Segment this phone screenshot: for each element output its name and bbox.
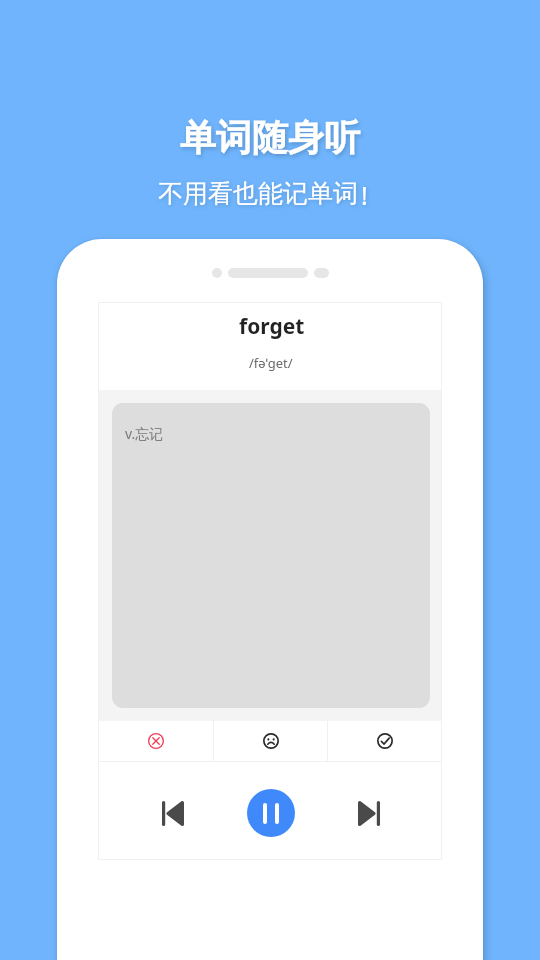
button[interactable]: Vague: [214, 721, 327, 761]
staticText: v.忘记: [125, 424, 164, 443]
button[interactable]: Forgot: [99, 721, 213, 761]
staticText: forget: [239, 312, 305, 341]
button[interactable]: Next: [343, 787, 395, 839]
button[interactable]: Previous: [147, 787, 199, 839]
staticText: 不用看也能记单词: [158, 178, 358, 209]
button[interactable]: Know: [328, 721, 441, 761]
staticText: !: [361, 178, 368, 212]
staticText: 单词随身听: [180, 115, 360, 160]
button[interactable]: Pause: [247, 789, 295, 837]
staticText: /fəˈget/: [249, 354, 293, 372]
